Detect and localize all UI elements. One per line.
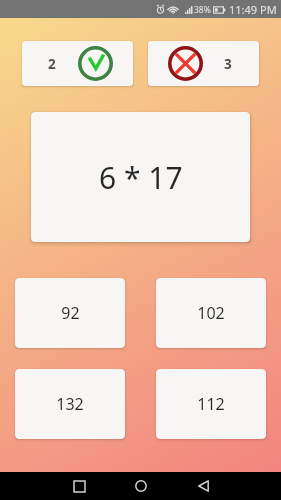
staticText: 92	[61, 302, 80, 324]
button[interactable]: 2	[22, 41, 133, 86]
button[interactable]: 112	[156, 369, 266, 439]
staticText: 6 * 17	[99, 157, 183, 198]
button[interactable]: Wrong answers	[148, 41, 259, 86]
staticText: 3	[224, 55, 232, 73]
staticText: 11:49 PM	[229, 2, 277, 17]
button[interactable]: 132	[15, 369, 125, 439]
button[interactable]: Recent apps	[48, 472, 110, 500]
button[interactable]: Home	[110, 472, 172, 500]
button[interactable]: 92	[15, 278, 125, 348]
staticText: 112	[197, 393, 225, 415]
button[interactable]: 102	[156, 278, 266, 348]
staticText: 132	[56, 393, 84, 415]
other: Correct answers	[78, 46, 113, 81]
staticText: 102	[197, 302, 225, 324]
staticText: 2	[48, 55, 56, 73]
staticText: 38%	[194, 4, 211, 16]
button[interactable]: Back	[172, 472, 234, 500]
other: Wrong answers	[168, 46, 203, 81]
